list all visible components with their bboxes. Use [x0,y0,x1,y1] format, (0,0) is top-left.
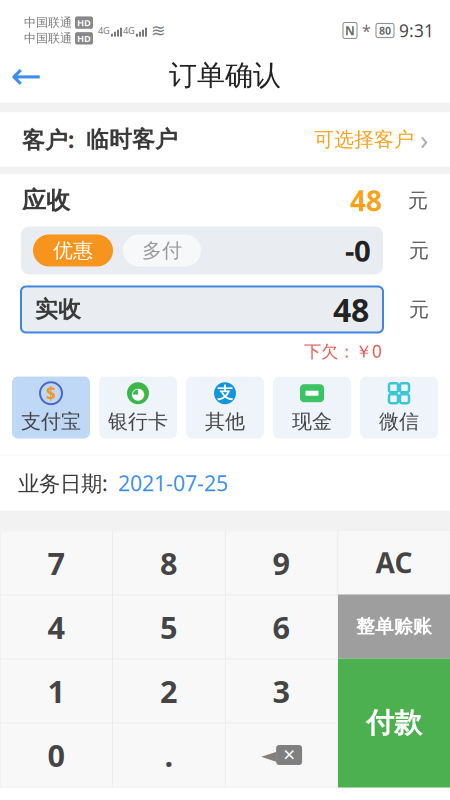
button[interactable]: 付款 [338,658,450,787]
staticText: 9:31 [399,19,434,42]
staticText: 3 [273,671,291,711]
staticText: 48 [350,182,382,219]
staticText: 多付 [142,238,182,263]
staticText: 元 [409,297,429,322]
button[interactable]: 9 [225,531,338,595]
button[interactable]: 2 [113,659,225,723]
staticText: 7 [47,543,65,583]
staticText: 业务日期: [18,469,108,497]
staticText: 现金 [292,409,332,434]
staticText: ≋ [151,21,166,40]
staticText: 付款 [366,706,422,740]
staticText: › [420,122,428,157]
staticText: 支付宝 [21,409,81,434]
button[interactable]: 1 [0,659,113,723]
staticText: ◕ [131,384,145,402]
staticText: 0 [47,735,65,775]
staticText: * [362,20,371,41]
staticText: 整单赊账 [356,615,432,638]
button[interactable]: 3 [225,659,338,723]
staticText: 支 [217,383,233,403]
staticText: 4G [98,24,110,37]
button[interactable]: 支 [186,376,264,438]
staticText: 48 [333,288,369,331]
staticText: 2021-07-25 [118,469,228,497]
button[interactable]: Backspace [225,723,338,787]
staticText: 微信 [379,409,419,434]
staticText: 1 [47,671,65,711]
button[interactable]: 业务日期: [0,455,450,510]
button[interactable]: . [113,723,225,787]
staticText: 元 [409,238,429,263]
button[interactable]: 5 [113,595,225,659]
button[interactable]: 8 [113,531,225,595]
staticText: 元 [408,188,428,213]
staticText: 5 [160,607,178,647]
button[interactable]: 微信 [360,376,438,438]
staticText: 6 [273,607,291,647]
staticText: ✕ [283,746,296,764]
staticText: 中国联通 [24,31,72,46]
button[interactable]: 6 [225,595,338,659]
staticText: 下欠：￥0 [304,339,382,362]
staticText: 8 [160,543,178,583]
staticText: 9 [273,543,291,583]
button[interactable]: AC [338,530,450,594]
staticText: 订单确认 [169,58,281,93]
button[interactable]: 客户: [0,112,450,166]
staticText: ← [10,54,41,97]
staticText: 2 [160,671,178,711]
staticText: HD [77,32,91,45]
button[interactable]: 0 [0,723,113,787]
staticText: N [345,22,355,38]
button[interactable]: 整单赊账 [338,594,450,658]
staticText: 客户: [22,124,74,154]
staticText: 中国联通 [24,15,72,30]
staticText: 4G [123,24,135,37]
staticText: 实收 [35,296,81,323]
staticText: 优惠 [53,238,93,263]
staticText: 可选择客户 [314,127,414,152]
button[interactable]: 优惠 [33,234,113,266]
button[interactable]: 4 [0,595,113,659]
staticText: 80 [379,23,391,38]
button[interactable]: 现金 [273,376,351,438]
staticText: -0 [345,231,371,270]
button[interactable]: ◕ [99,376,177,438]
button[interactable]: Back [0,51,52,99]
staticText: . [164,735,173,775]
staticText: HD [77,16,91,29]
staticText: 临时客户 [86,126,178,153]
staticText: 应收 [22,186,70,215]
staticText: 银行卡 [108,409,168,434]
button[interactable]: $ [12,376,90,438]
staticText: ◄ [261,744,276,766]
staticText: 4 [47,607,65,647]
button[interactable]: 多付 [123,234,201,266]
staticText: AC [375,544,412,581]
button[interactable]: 7 [0,531,113,595]
staticText: 其他 [205,409,245,434]
staticText: $ [46,382,56,405]
